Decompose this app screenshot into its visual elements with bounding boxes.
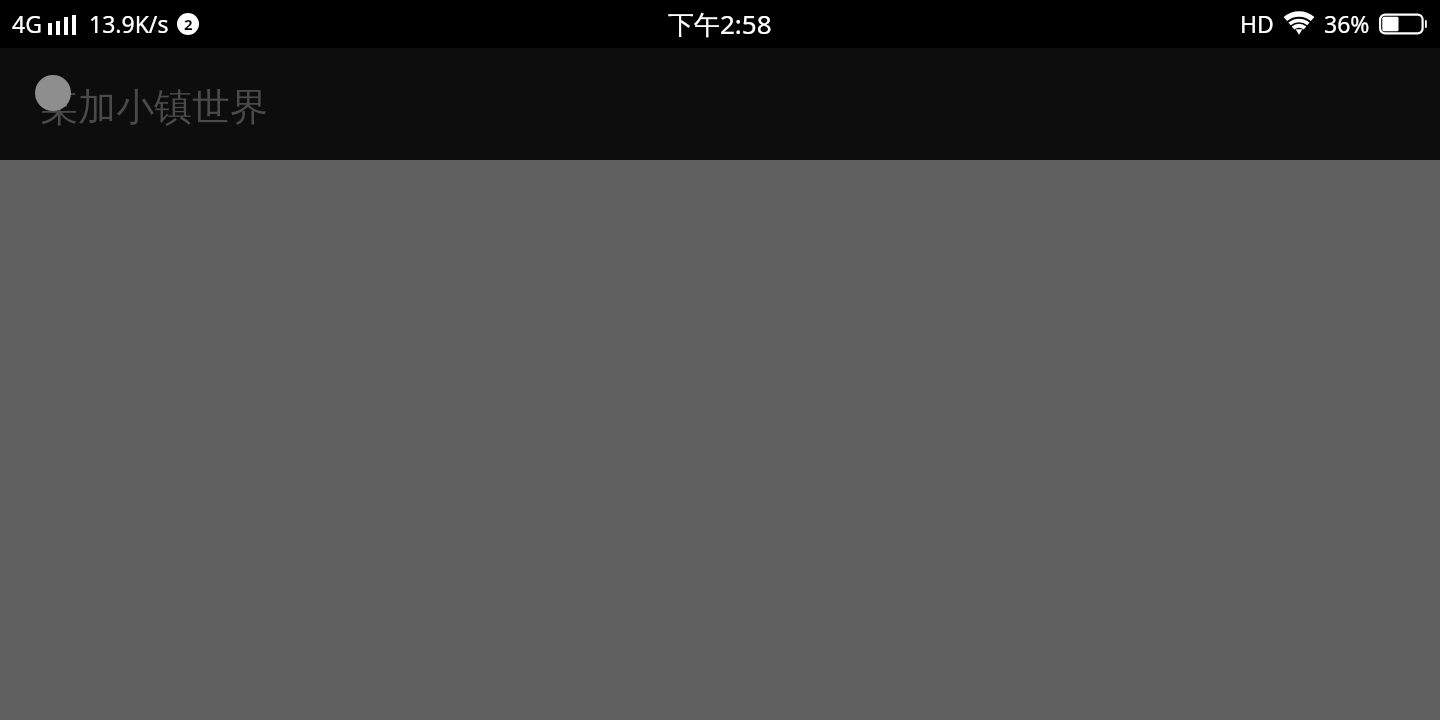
staticText: 2	[184, 14, 193, 34]
staticText: 某加小镇世界	[40, 83, 268, 131]
other: Battery 36 percent	[1379, 12, 1427, 36]
staticText: 36%	[1324, 8, 1370, 39]
staticText: HD	[1240, 8, 1274, 39]
other: Cellular signal	[48, 13, 76, 35]
staticText: 下午2:58	[668, 6, 772, 42]
button[interactable]: 某加小镇世界	[0, 48, 320, 160]
staticText: 4G	[12, 8, 42, 39]
staticText: 13.9K/s	[89, 8, 169, 39]
other: Wi-Fi	[1283, 11, 1315, 37]
